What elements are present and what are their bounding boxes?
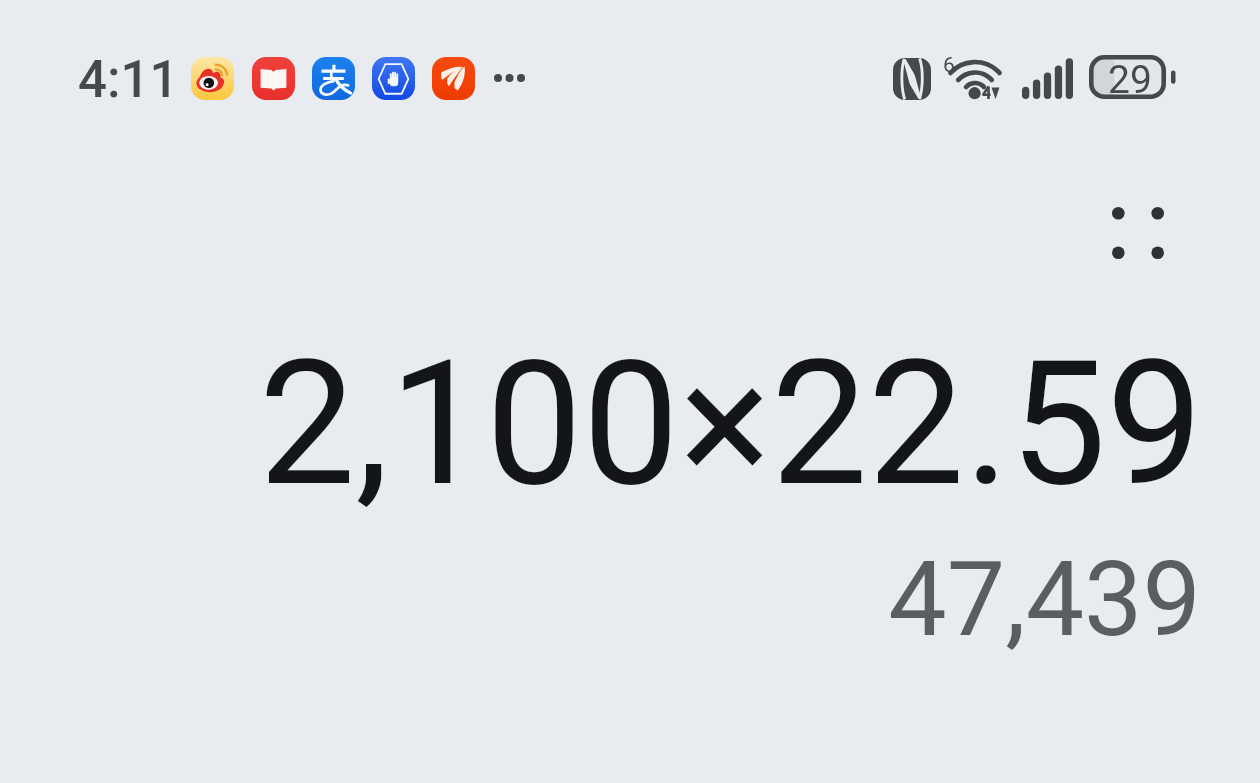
- button[interactable]: 2,100×22.59: [0, 323, 1203, 525]
- button[interactable]: More options: [1089, 184, 1186, 281]
- staticText: 2,100×22.59: [258, 323, 1203, 525]
- button[interactable]: 47,439: [0, 539, 1201, 661]
- staticText: 4:11: [78, 50, 179, 110]
- staticText: 6: [943, 53, 955, 78]
- staticText: 29: [1108, 57, 1152, 103]
- staticText: 47,439: [888, 539, 1201, 661]
